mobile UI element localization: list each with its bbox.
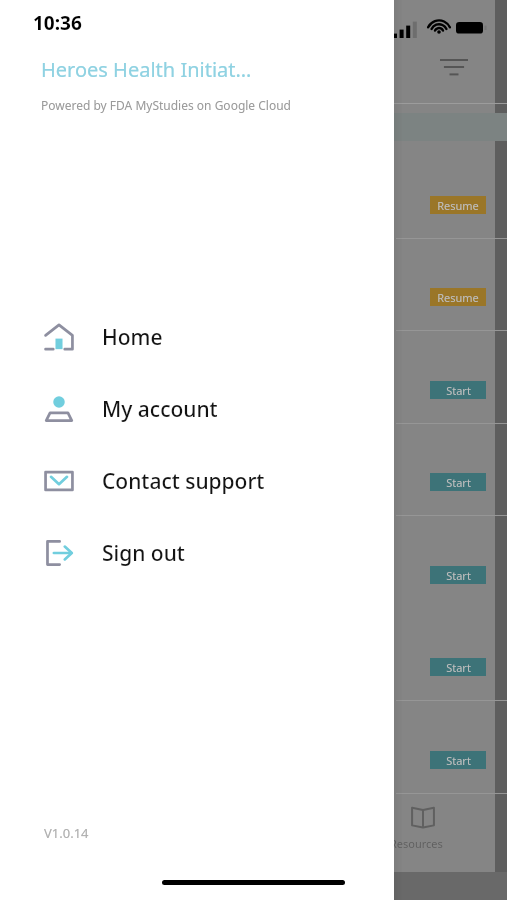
staticText: 10:36 [33,10,82,36]
button[interactable]: My account [0,386,394,432]
staticText: Contact support [102,467,265,496]
staticText: Resume [437,290,479,305]
staticText: Resume [437,198,479,213]
staticText: Heroes Health Initiat… [41,56,252,83]
staticText: Start [446,383,471,398]
button[interactable]: Home [0,314,394,360]
staticText: Powered by FDA MyStudies on Google Cloud [41,97,291,113]
staticText: Start [446,568,471,583]
staticText: Start [446,753,471,768]
staticText: V1.0.14 [44,824,89,842]
staticText: My account [102,395,218,424]
staticText: Sign out [102,539,185,568]
button[interactable]: Sign out [0,530,394,576]
staticText: Home [102,323,163,352]
button[interactable]: Contact support [0,458,394,504]
staticText: Start [446,475,471,490]
staticText: Start [446,660,471,675]
staticText: Resources [390,836,443,851]
